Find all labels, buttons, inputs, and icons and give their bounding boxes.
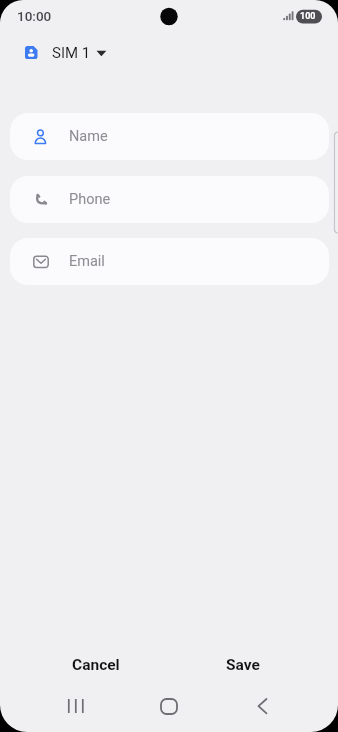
button[interactable]: Name [10,113,329,160]
button[interactable]: SIM 1 [18,40,114,65]
staticText: Save [226,656,260,674]
staticText: 10:00 [17,8,52,24]
staticText: Phone [69,191,111,208]
staticText: Name [69,128,108,145]
button[interactable]: Save [182,643,303,686]
staticText: SIM 1 [52,44,91,62]
staticText: 100 [300,11,316,22]
staticText: Email [69,253,105,270]
button[interactable] [154,692,184,720]
button[interactable] [248,692,278,720]
staticText: Cancel [72,656,120,674]
button[interactable]: Phone [10,176,329,223]
button[interactable]: Email [10,238,329,285]
button[interactable] [61,692,91,720]
button[interactable]: Cancel [35,643,156,686]
